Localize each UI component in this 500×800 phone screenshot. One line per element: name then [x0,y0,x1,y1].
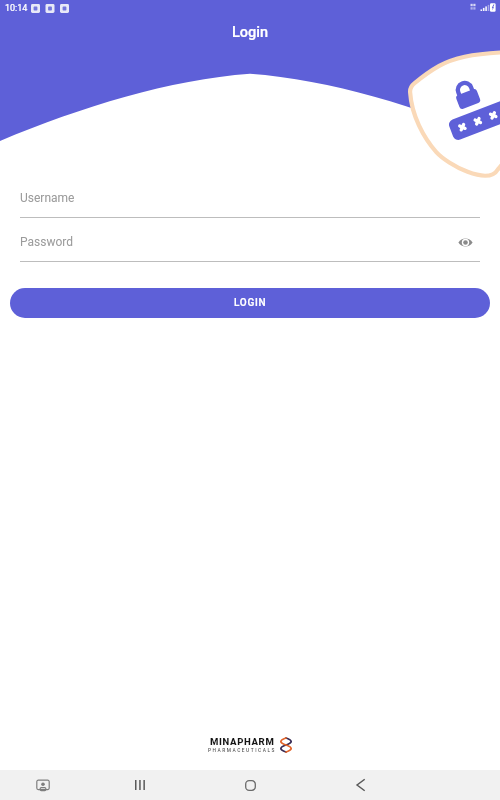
staticText: 10:14 [5,3,28,14]
staticText: LOGIN [234,297,267,309]
button[interactable]: LOGIN [10,288,490,318]
button[interactable]: Recent apps [118,770,162,800]
button[interactable]: Username [0,177,500,221]
staticText: Password [20,235,74,249]
staticText: MINAPHARM [210,736,275,747]
staticText: Username [20,191,75,205]
staticText: Login [232,24,269,41]
button[interactable]: Password [0,221,500,265]
button[interactable]: Hide keyboard [21,770,65,800]
staticText: PHARMACEUTICALS [208,748,276,754]
button[interactable]: Back [338,770,382,800]
button[interactable]: Toggle password visibility [451,228,479,256]
button[interactable]: Home [228,770,272,800]
